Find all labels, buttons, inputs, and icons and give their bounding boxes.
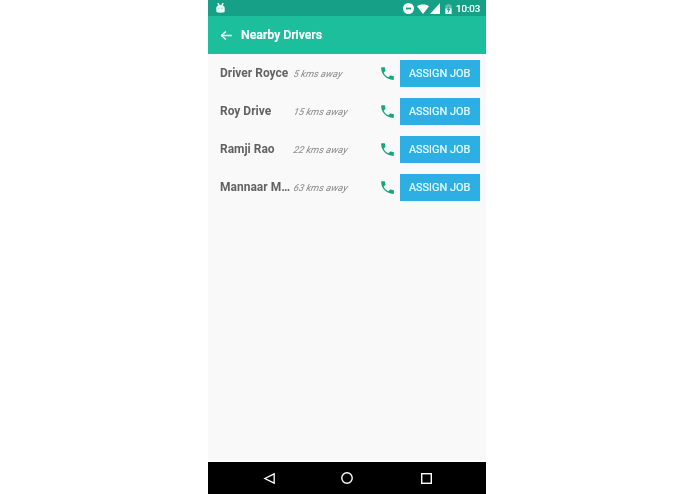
staticText: 5 kms away	[293, 68, 342, 79]
button[interactable]: Call driver	[373, 62, 395, 84]
button[interactable]: ASSIGN JOB	[400, 136, 480, 163]
button[interactable]: ASSIGN JOB	[400, 174, 480, 201]
staticText: ASSIGN JOB	[409, 105, 471, 118]
button[interactable]: Call driver	[373, 138, 395, 160]
button[interactable]: Recent apps	[408, 462, 444, 494]
staticText: Roy Drive	[220, 104, 293, 118]
button[interactable]: Mannaar Mannan	[208, 168, 486, 206]
staticText: Mannaar Mannan	[220, 180, 293, 194]
staticText: ASSIGN JOB	[409, 181, 471, 194]
button[interactable]: Ramji Rao	[208, 130, 486, 168]
staticText: 22 kms away	[293, 144, 347, 155]
button[interactable]: Navigate up	[216, 25, 237, 46]
staticText: ASSIGN JOB	[409, 67, 471, 80]
button[interactable]: Driver Royce	[208, 54, 486, 92]
button[interactable]: Home	[329, 462, 365, 494]
staticText: ASSIGN JOB	[409, 143, 471, 156]
button[interactable]: Call driver	[373, 100, 395, 122]
staticText: Driver Royce	[220, 66, 293, 80]
button[interactable]: ASSIGN JOB	[400, 60, 480, 87]
staticText: Ramji Rao	[220, 142, 293, 156]
button[interactable]: Roy Drive	[208, 92, 486, 130]
button[interactable]: Back	[251, 462, 287, 494]
staticText: 15 kms away	[293, 106, 347, 117]
staticText: Nearby Drivers	[241, 28, 323, 42]
staticText: 10:03	[456, 3, 481, 14]
staticText: 63 kms away	[293, 182, 347, 193]
button[interactable]: Call driver	[373, 176, 395, 198]
button[interactable]: ASSIGN JOB	[400, 98, 480, 125]
